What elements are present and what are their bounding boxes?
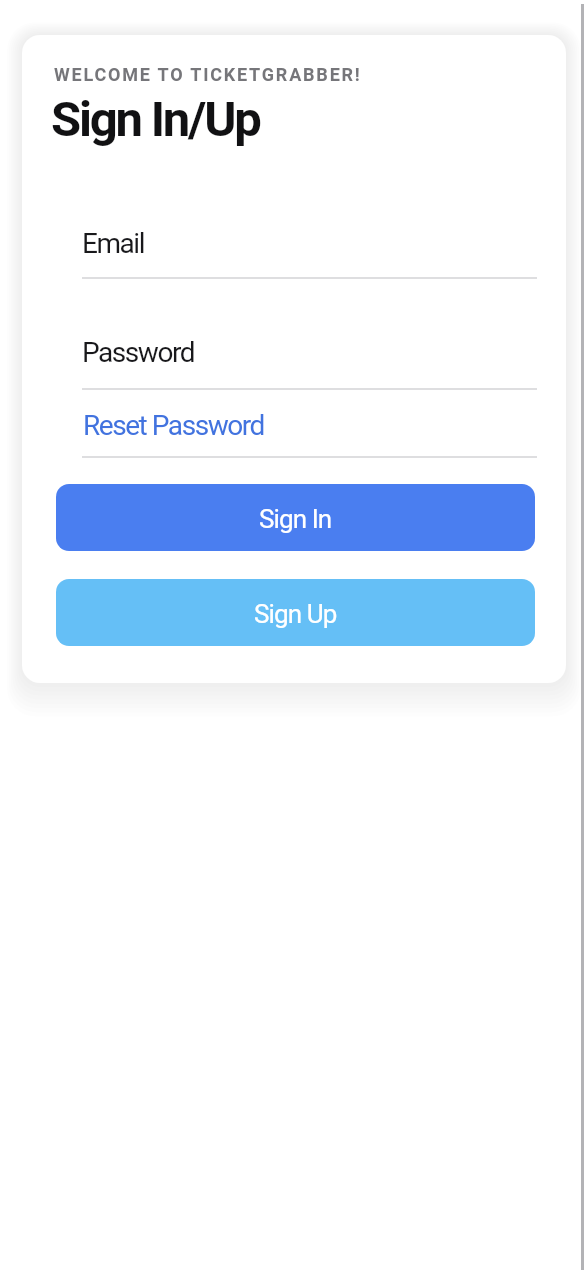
staticText: Sign Up — [254, 599, 337, 629]
staticText: Reset Password — [83, 409, 264, 442]
staticText: Sign In — [259, 504, 332, 534]
button[interactable]: Sign Up — [56, 579, 535, 646]
button[interactable]: Reset Password — [83, 409, 264, 442]
staticText: Sign In/Up — [51, 91, 260, 148]
staticText: Email — [82, 227, 145, 260]
button[interactable]: Sign In — [56, 484, 535, 551]
staticText: WELCOME TO TICKETGRABBER! — [54, 64, 362, 85]
staticText: Password — [82, 336, 195, 369]
